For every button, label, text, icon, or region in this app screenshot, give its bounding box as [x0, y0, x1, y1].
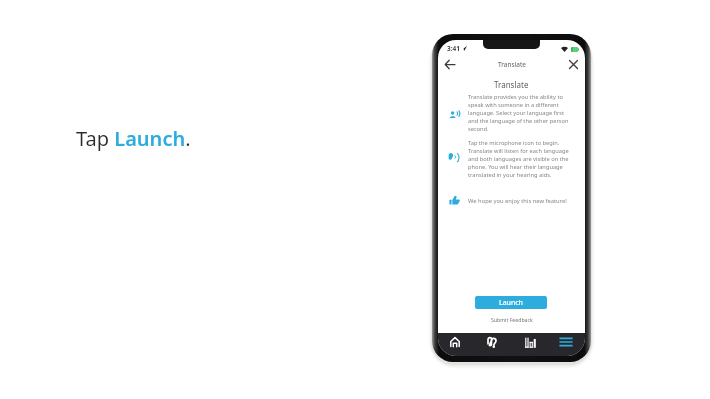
button[interactable]: Submit Feedback: [485, 315, 539, 324]
button[interactable]: Launch: [475, 296, 547, 309]
staticText: 3:41: [447, 44, 460, 53]
staticText: Translate: [498, 60, 526, 69]
button[interactable]: Hearing aids: [482, 333, 502, 351]
staticText: Translate: [494, 79, 529, 90]
button[interactable]: Menu: [556, 333, 576, 351]
staticText: Submit Feedback: [491, 316, 533, 323]
staticText: Launch: [499, 298, 523, 308]
staticText: Tap the microphone icon to begin. Transl…: [468, 139, 574, 179]
button[interactable]: Home: [445, 333, 465, 351]
button[interactable]: Back: [442, 57, 457, 72]
button[interactable]: Statistics: [520, 333, 540, 351]
staticText: Tap Launch.: [76, 125, 191, 152]
button[interactable]: Close: [566, 57, 581, 72]
staticText: Translate provides you the ability to sp…: [468, 93, 574, 133]
staticText: We hope you enjoy this new feature!: [468, 197, 567, 205]
